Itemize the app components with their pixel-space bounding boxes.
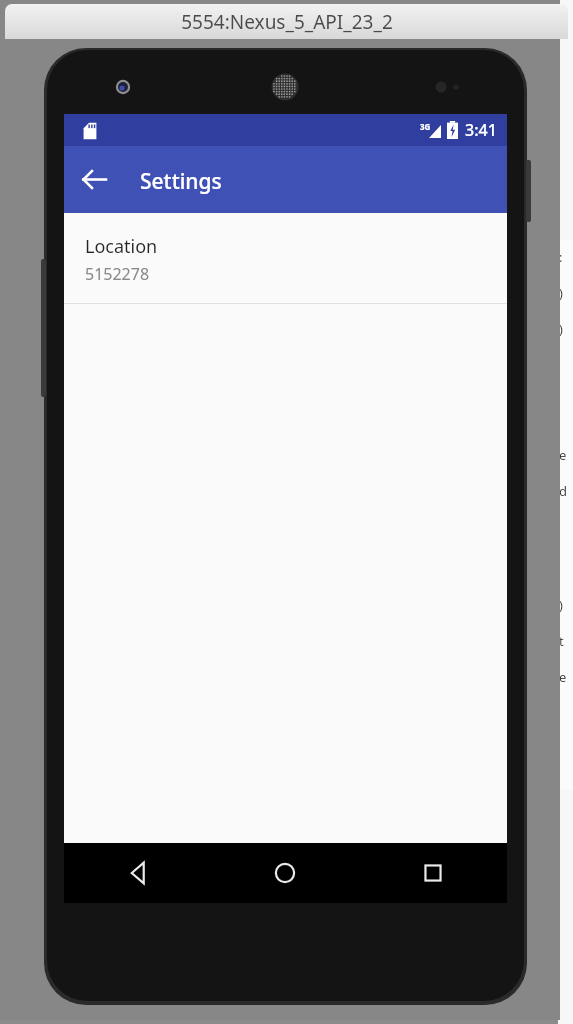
staticText: d <box>559 482 567 500</box>
staticText: ) <box>559 596 563 614</box>
staticText: 3:41 <box>465 119 497 141</box>
button[interactable]: Recent apps <box>359 843 507 903</box>
button[interactable]: Home <box>211 843 359 903</box>
button[interactable]: Back <box>64 843 211 903</box>
staticText: ) <box>559 320 563 338</box>
button[interactable]: Location <box>64 213 507 303</box>
staticText: 3G <box>420 121 431 132</box>
staticText: 5152278 <box>85 263 150 285</box>
staticText: e <box>559 446 567 464</box>
staticText: 5554:Nexus_5_API_23_2 <box>181 9 393 35</box>
staticText: t <box>559 632 564 650</box>
staticText: : <box>559 248 563 266</box>
staticText: Location <box>85 234 158 259</box>
button[interactable]: Navigate up <box>74 159 115 200</box>
staticText: e <box>559 668 567 686</box>
staticText: Settings <box>140 167 222 196</box>
staticText: ) <box>559 284 563 302</box>
